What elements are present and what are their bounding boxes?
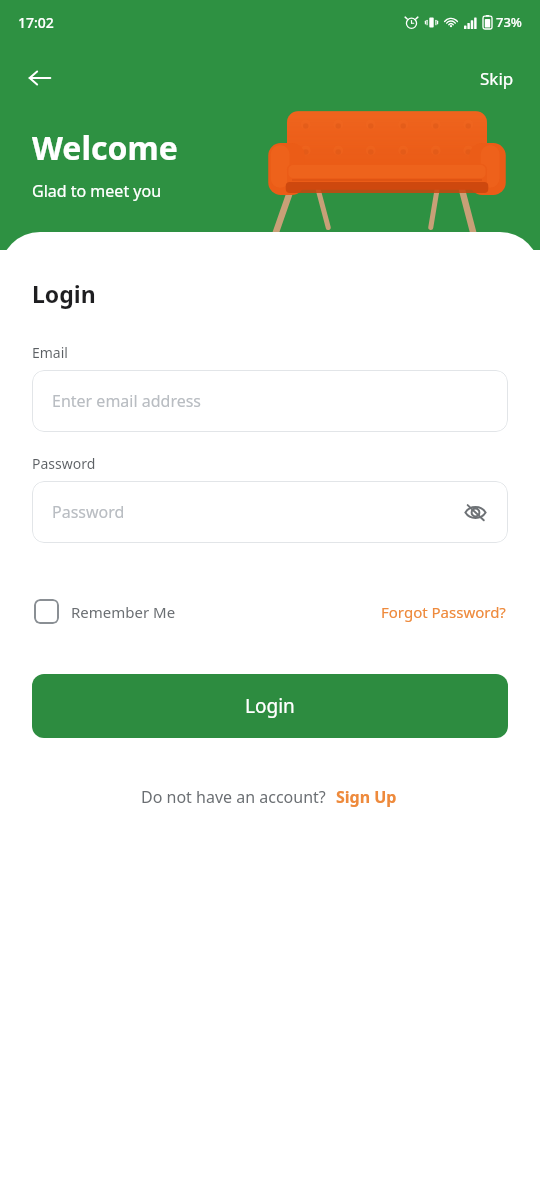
staticText: Sign Up xyxy=(336,786,397,808)
staticText: Glad to meet you xyxy=(32,180,162,202)
staticText: Login xyxy=(245,693,295,719)
staticText: Enter email address xyxy=(52,390,202,412)
staticText: 73% xyxy=(496,13,522,31)
staticText: Welcome xyxy=(32,126,178,170)
staticText: Email xyxy=(32,343,68,362)
button[interactable]: Show password xyxy=(458,495,492,529)
staticText: Forgot Password? xyxy=(381,602,506,622)
staticText: Do not have an account? xyxy=(141,786,326,808)
button[interactable]: Password xyxy=(32,481,508,543)
button[interactable]: Skip xyxy=(474,63,520,94)
staticText: Remember Me xyxy=(71,602,176,622)
staticText: Password xyxy=(32,454,96,473)
button[interactable]: Sign Up xyxy=(334,784,399,810)
button[interactable]: Back xyxy=(20,58,60,98)
button[interactable]: Forgot Password? xyxy=(379,598,508,626)
staticText: Skip xyxy=(480,67,514,90)
staticText: Password xyxy=(52,501,125,523)
staticText: Login xyxy=(32,278,96,309)
button[interactable]: Remember Me xyxy=(32,595,178,628)
button[interactable]: Enter email address xyxy=(32,370,508,432)
button[interactable]: Login xyxy=(32,674,508,738)
staticText: 17:02 xyxy=(18,13,54,32)
